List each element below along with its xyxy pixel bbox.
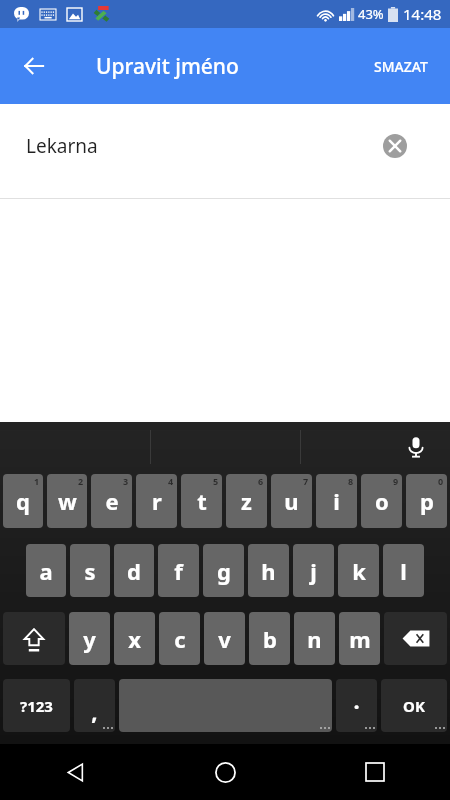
button[interactable]: 3: [91, 474, 132, 528]
staticText: y: [83, 624, 96, 654]
button[interactable]: 5: [181, 474, 222, 528]
staticText: n: [307, 624, 322, 654]
button[interactable]: k: [338, 544, 379, 597]
button[interactable]: x: [114, 612, 155, 665]
staticText: q: [16, 486, 30, 516]
staticText: 6: [258, 475, 264, 487]
staticText: t: [197, 486, 207, 516]
button[interactable]: [300, 422, 450, 472]
staticText: Upravit jméno: [96, 52, 239, 81]
staticText: w: [58, 486, 77, 516]
button[interactable]: n: [294, 612, 335, 665]
staticText: Lekarna: [26, 133, 98, 159]
button[interactable]: Back: [0, 744, 150, 800]
staticText: 5: [213, 475, 219, 487]
staticText: SMAZAT: [374, 57, 428, 76]
staticText: 7: [303, 475, 309, 487]
staticText: 43%: [358, 5, 384, 23]
staticText: i: [333, 486, 340, 516]
staticText: h: [261, 556, 276, 586]
button[interactable]: SMAZAT: [360, 45, 442, 88]
staticText: e: [105, 486, 119, 516]
button[interactable]: Voice input: [396, 427, 436, 467]
staticText: g: [217, 556, 231, 586]
staticText: j: [310, 556, 317, 586]
button[interactable]: d: [114, 544, 154, 597]
staticText: 8: [348, 475, 354, 487]
staticText: k: [352, 556, 366, 586]
button[interactable]: Backspace: [384, 612, 447, 665]
staticText: d: [127, 556, 141, 586]
staticText: x: [128, 624, 141, 654]
button[interactable]: j: [293, 544, 334, 597]
button[interactable]: Home: [150, 744, 300, 800]
button[interactable]: ?123: [3, 679, 70, 732]
button[interactable]: a: [26, 544, 66, 597]
button[interactable]: ·: [336, 679, 377, 732]
button[interactable]: 9: [361, 474, 402, 528]
button[interactable]: 7: [271, 474, 312, 528]
staticText: 14:48: [403, 4, 442, 24]
staticText: s: [84, 556, 96, 586]
button[interactable]: m: [339, 612, 380, 665]
staticText: 3: [123, 475, 129, 487]
button[interactable]: 2: [47, 474, 87, 528]
staticText: u: [284, 486, 299, 516]
staticText: 2: [78, 475, 84, 487]
staticText: r: [152, 486, 162, 516]
button[interactable]: Clear text: [378, 129, 412, 163]
staticText: 0: [438, 475, 444, 487]
staticText: f: [174, 556, 183, 586]
staticText: ,: [91, 696, 98, 726]
staticText: c: [174, 624, 186, 654]
staticText: l: [400, 556, 407, 586]
button[interactable]: v: [204, 612, 245, 665]
button[interactable]: Shift: [3, 612, 65, 665]
staticText: b: [263, 624, 277, 654]
button[interactable]: Space: [119, 679, 332, 732]
button[interactable]: Recent apps: [300, 744, 450, 800]
button[interactable]: c: [159, 612, 200, 665]
button[interactable]: y: [69, 612, 110, 665]
staticText: OK: [403, 696, 425, 716]
staticText: a: [39, 556, 53, 586]
button[interactable]: Back: [10, 42, 58, 90]
staticText: z: [241, 486, 252, 516]
button[interactable]: f: [158, 544, 199, 597]
staticText: ·: [353, 691, 360, 721]
button[interactable]: 4: [136, 474, 177, 528]
button[interactable]: 1: [3, 474, 43, 528]
button[interactable]: h: [248, 544, 289, 597]
button[interactable]: ,: [74, 679, 115, 732]
staticText: v: [218, 624, 231, 654]
button[interactable]: 8: [316, 474, 357, 528]
staticText: o: [375, 486, 389, 516]
button[interactable]: OK: [381, 679, 447, 732]
staticText: ?123: [20, 696, 53, 716]
staticText: m: [349, 624, 371, 654]
button[interactable]: b: [249, 612, 290, 665]
button[interactable]: l: [383, 544, 424, 597]
staticText: p: [420, 486, 434, 516]
staticText: 4: [168, 475, 174, 487]
button[interactable]: 6: [226, 474, 267, 528]
staticText: 1: [34, 475, 40, 487]
button[interactable]: g: [203, 544, 244, 597]
staticText: 9: [393, 475, 399, 487]
button[interactable]: s: [70, 544, 110, 597]
button[interactable]: 0: [406, 474, 447, 528]
